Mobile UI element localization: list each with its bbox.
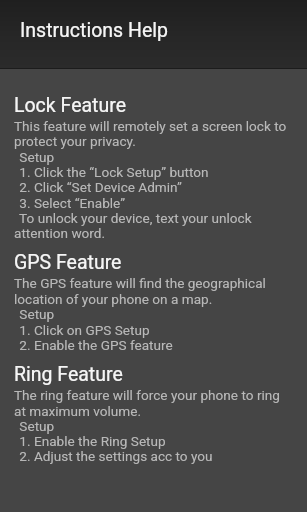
staticText: Lock Feature xyxy=(14,94,126,117)
staticText: protect your privacy. xyxy=(14,133,136,149)
staticText: The ring feature will force your phone t… xyxy=(14,387,280,403)
staticText: Instructions Help xyxy=(20,19,168,42)
staticText: Setup xyxy=(16,149,55,165)
staticText: GPS Feature xyxy=(14,251,122,274)
staticText: 2. Click “Set Device Admin” xyxy=(16,179,182,195)
staticText: 1. Click on GPS Setup xyxy=(16,322,150,338)
staticText: 3. Select “Enable” xyxy=(16,195,126,211)
staticText: To unlock your device, text your unlock xyxy=(16,210,252,226)
staticText: location of your phone on a map. xyxy=(14,291,213,307)
staticText: 1. Enable the Ring Setup xyxy=(16,433,166,449)
staticText: attention word. xyxy=(14,225,106,241)
staticText: This feature will remotely set a screen … xyxy=(14,118,287,134)
staticText: Setup xyxy=(16,306,55,322)
staticText: The GPS feature will find the geographic… xyxy=(14,275,266,291)
staticText: 2. Enable the GPS feature xyxy=(16,337,173,353)
button[interactable]: Instructions Help, up xyxy=(0,0,307,69)
staticText: at maximum volume. xyxy=(14,403,142,419)
staticText: 2. Adjust the settings acc to you xyxy=(16,448,213,464)
staticText: Setup xyxy=(16,418,55,434)
staticText: Ring Feature xyxy=(14,363,123,386)
staticText: 1. Click the “Lock Setup” button xyxy=(16,164,209,180)
